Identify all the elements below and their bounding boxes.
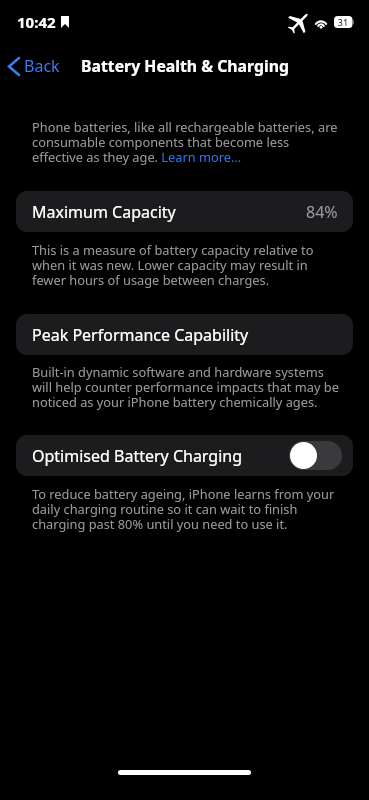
staticText: Phone batteries, like all rechargeable b… xyxy=(32,118,341,166)
button[interactable]: Back xyxy=(0,49,70,83)
staticText: Peak Performance Capability xyxy=(32,324,249,346)
button[interactable]: Peak Performance Capability xyxy=(16,314,353,355)
staticText: Battery Health & Charging xyxy=(81,55,289,77)
staticText: This is a measure of battery capacity re… xyxy=(32,241,341,289)
button[interactable]: Maximum Capacity xyxy=(16,191,353,232)
button[interactable]: Optimised Battery Charging toggle xyxy=(289,441,342,470)
staticText: Maximum Capacity xyxy=(32,201,176,223)
staticText: Back xyxy=(24,55,60,77)
staticText: 84% xyxy=(306,201,338,223)
staticText: 10:42 xyxy=(17,12,56,32)
staticText: Built-in dynamic software and hardware s… xyxy=(32,363,341,411)
staticText: 31 xyxy=(334,16,352,28)
button[interactable]: Optimised Battery Charging xyxy=(16,435,353,476)
staticText: Optimised Battery Charging xyxy=(32,445,243,467)
staticText: To reduce battery ageing, iPhone learns … xyxy=(32,485,341,533)
